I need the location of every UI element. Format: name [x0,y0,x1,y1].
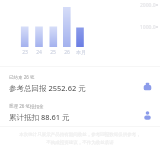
staticText: 已结束 26 笔 [9,74,35,80]
other: 抵扣详情 [141,109,154,122]
staticText: 本月 [74,49,88,55]
staticText: 累计抵扣 88.61 元 [9,112,70,122]
staticText: 1000.0 [140,24,156,31]
staticText: 23 [18,49,32,56]
other: 回报详情 [141,80,154,93]
staticText: 受理 26 笔抵扣金 [9,103,44,109]
button[interactable]: 已结束 26 笔 [0,70,160,96]
staticText: 参考总回报 2552.62 元 [9,83,86,93]
staticText: 2000.0 [140,2,156,9]
staticText: 25 [46,49,60,56]
staticText: 本次统计只展示产品持有期间收益，参考回报数据仅供参考， 不构成投资建议，不作为收… [8,132,152,145]
button[interactable]: 受理 26 笔抵扣金 [0,99,160,125]
staticText: 24 [32,49,46,56]
staticText: 26 [60,49,74,56]
